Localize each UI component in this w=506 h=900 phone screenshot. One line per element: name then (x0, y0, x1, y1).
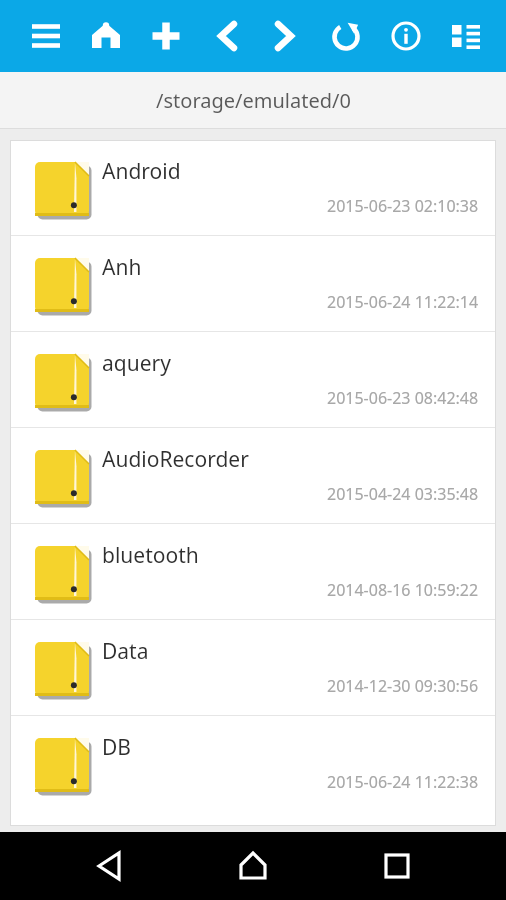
staticText: Android (102, 157, 181, 186)
button[interactable]: Refresh (320, 10, 372, 62)
button[interactable]: Add (140, 10, 192, 62)
staticText: 2015-06-23 02:10:38 (327, 195, 479, 217)
staticText: 2014-12-30 09:30:56 (327, 675, 479, 697)
button[interactable]: Info (380, 10, 432, 62)
button[interactable]: Home (219, 832, 287, 900)
button[interactable]: Back (200, 10, 252, 62)
staticText: 2014-08-16 10:59:22 (327, 579, 479, 601)
staticText: 2015-04-24 03:35:48 (327, 483, 479, 505)
staticText: 2015-06-23 08:42:48 (327, 387, 479, 409)
button[interactable]: Android (10, 140, 496, 235)
button[interactable]: Back (76, 832, 144, 900)
button[interactable]: View mode (440, 10, 492, 62)
staticText: /storage/emulated/0 (156, 87, 351, 114)
button[interactable]: /storage/emulated/0 (0, 72, 506, 128)
button[interactable]: Home (80, 10, 132, 62)
staticText: bluetooth (102, 541, 199, 570)
staticText: 2015-06-24 11:22:38 (327, 771, 479, 793)
button[interactable]: Anh (10, 236, 496, 331)
button[interactable]: bluetooth (10, 524, 496, 619)
button[interactable]: aquery (10, 332, 496, 427)
staticText: DB (102, 733, 131, 762)
staticText: aquery (102, 349, 171, 378)
staticText: AudioRecorder (102, 445, 249, 474)
button[interactable]: AudioRecorder (10, 428, 496, 523)
button[interactable]: DB (10, 716, 496, 811)
button[interactable]: Recents (363, 832, 431, 900)
button[interactable]: Forward (260, 10, 312, 62)
staticText: Anh (102, 253, 142, 282)
button[interactable]: Menu (20, 10, 72, 62)
staticText: 2015-06-24 11:22:14 (327, 291, 479, 313)
staticText: Data (102, 637, 149, 666)
button[interactable]: Data (10, 620, 496, 715)
